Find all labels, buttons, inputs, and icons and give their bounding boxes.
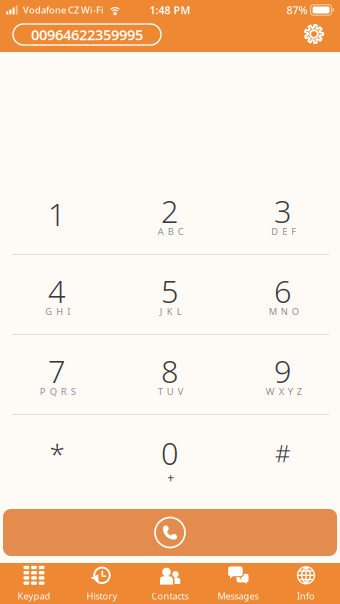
staticText: 8 [161,351,179,391]
button[interactable]: 1 [0,175,113,254]
button[interactable]: * [0,415,113,494]
staticText: T U V [158,385,184,398]
staticText: Contacts [151,590,188,602]
staticText: Messages [217,590,258,602]
staticText: P Q R S [40,385,76,398]
button[interactable]: 2 [113,175,226,254]
button[interactable]: 0 [113,415,226,494]
button[interactable]: 6 [226,255,339,334]
staticText: Info [297,590,315,602]
button[interactable]: Messages [204,563,272,604]
staticText: + [167,469,174,485]
staticText: 6 [274,271,292,311]
button[interactable]: 4 [0,255,113,334]
button[interactable]: 3 [226,175,339,254]
button[interactable]: Call [3,509,337,556]
staticText: 00964622359995 [31,25,143,44]
staticText: G H I [45,305,70,318]
staticText: 9 [274,351,292,391]
button[interactable]: 00964622359995 [13,24,161,45]
staticText: 1:48 PM [149,3,190,17]
staticText: * [49,435,64,473]
staticText: History [86,590,117,602]
staticText: W X Y Z [266,385,302,398]
staticText: M N O [269,305,299,318]
button[interactable]: History [68,563,136,604]
button[interactable]: Info [272,563,340,604]
button[interactable]: 8 [113,335,226,414]
button[interactable]: 9 [226,335,339,414]
staticText: A B C [158,225,184,238]
staticText: 2 [161,191,179,231]
staticText: 87% [287,3,308,17]
staticText: # [275,437,291,469]
button[interactable]: Keypad [0,563,68,604]
staticText: 0 [161,433,179,473]
button[interactable]: Settings [297,19,331,49]
staticText: 3 [274,191,292,231]
staticText: 4 [48,271,66,311]
button[interactable]: # [226,415,339,494]
staticText: Vodafone CZ Wi-Fi [23,4,104,16]
staticText: 5 [161,271,179,311]
staticText: 1 [48,194,66,234]
staticText: Keypad [17,590,50,602]
button[interactable]: 5 [113,255,226,334]
button[interactable]: 7 [0,335,113,414]
staticText: J K L [160,305,182,318]
staticText: 7 [48,351,66,391]
button[interactable]: Contacts [136,563,204,604]
staticText: D E F [271,225,296,238]
